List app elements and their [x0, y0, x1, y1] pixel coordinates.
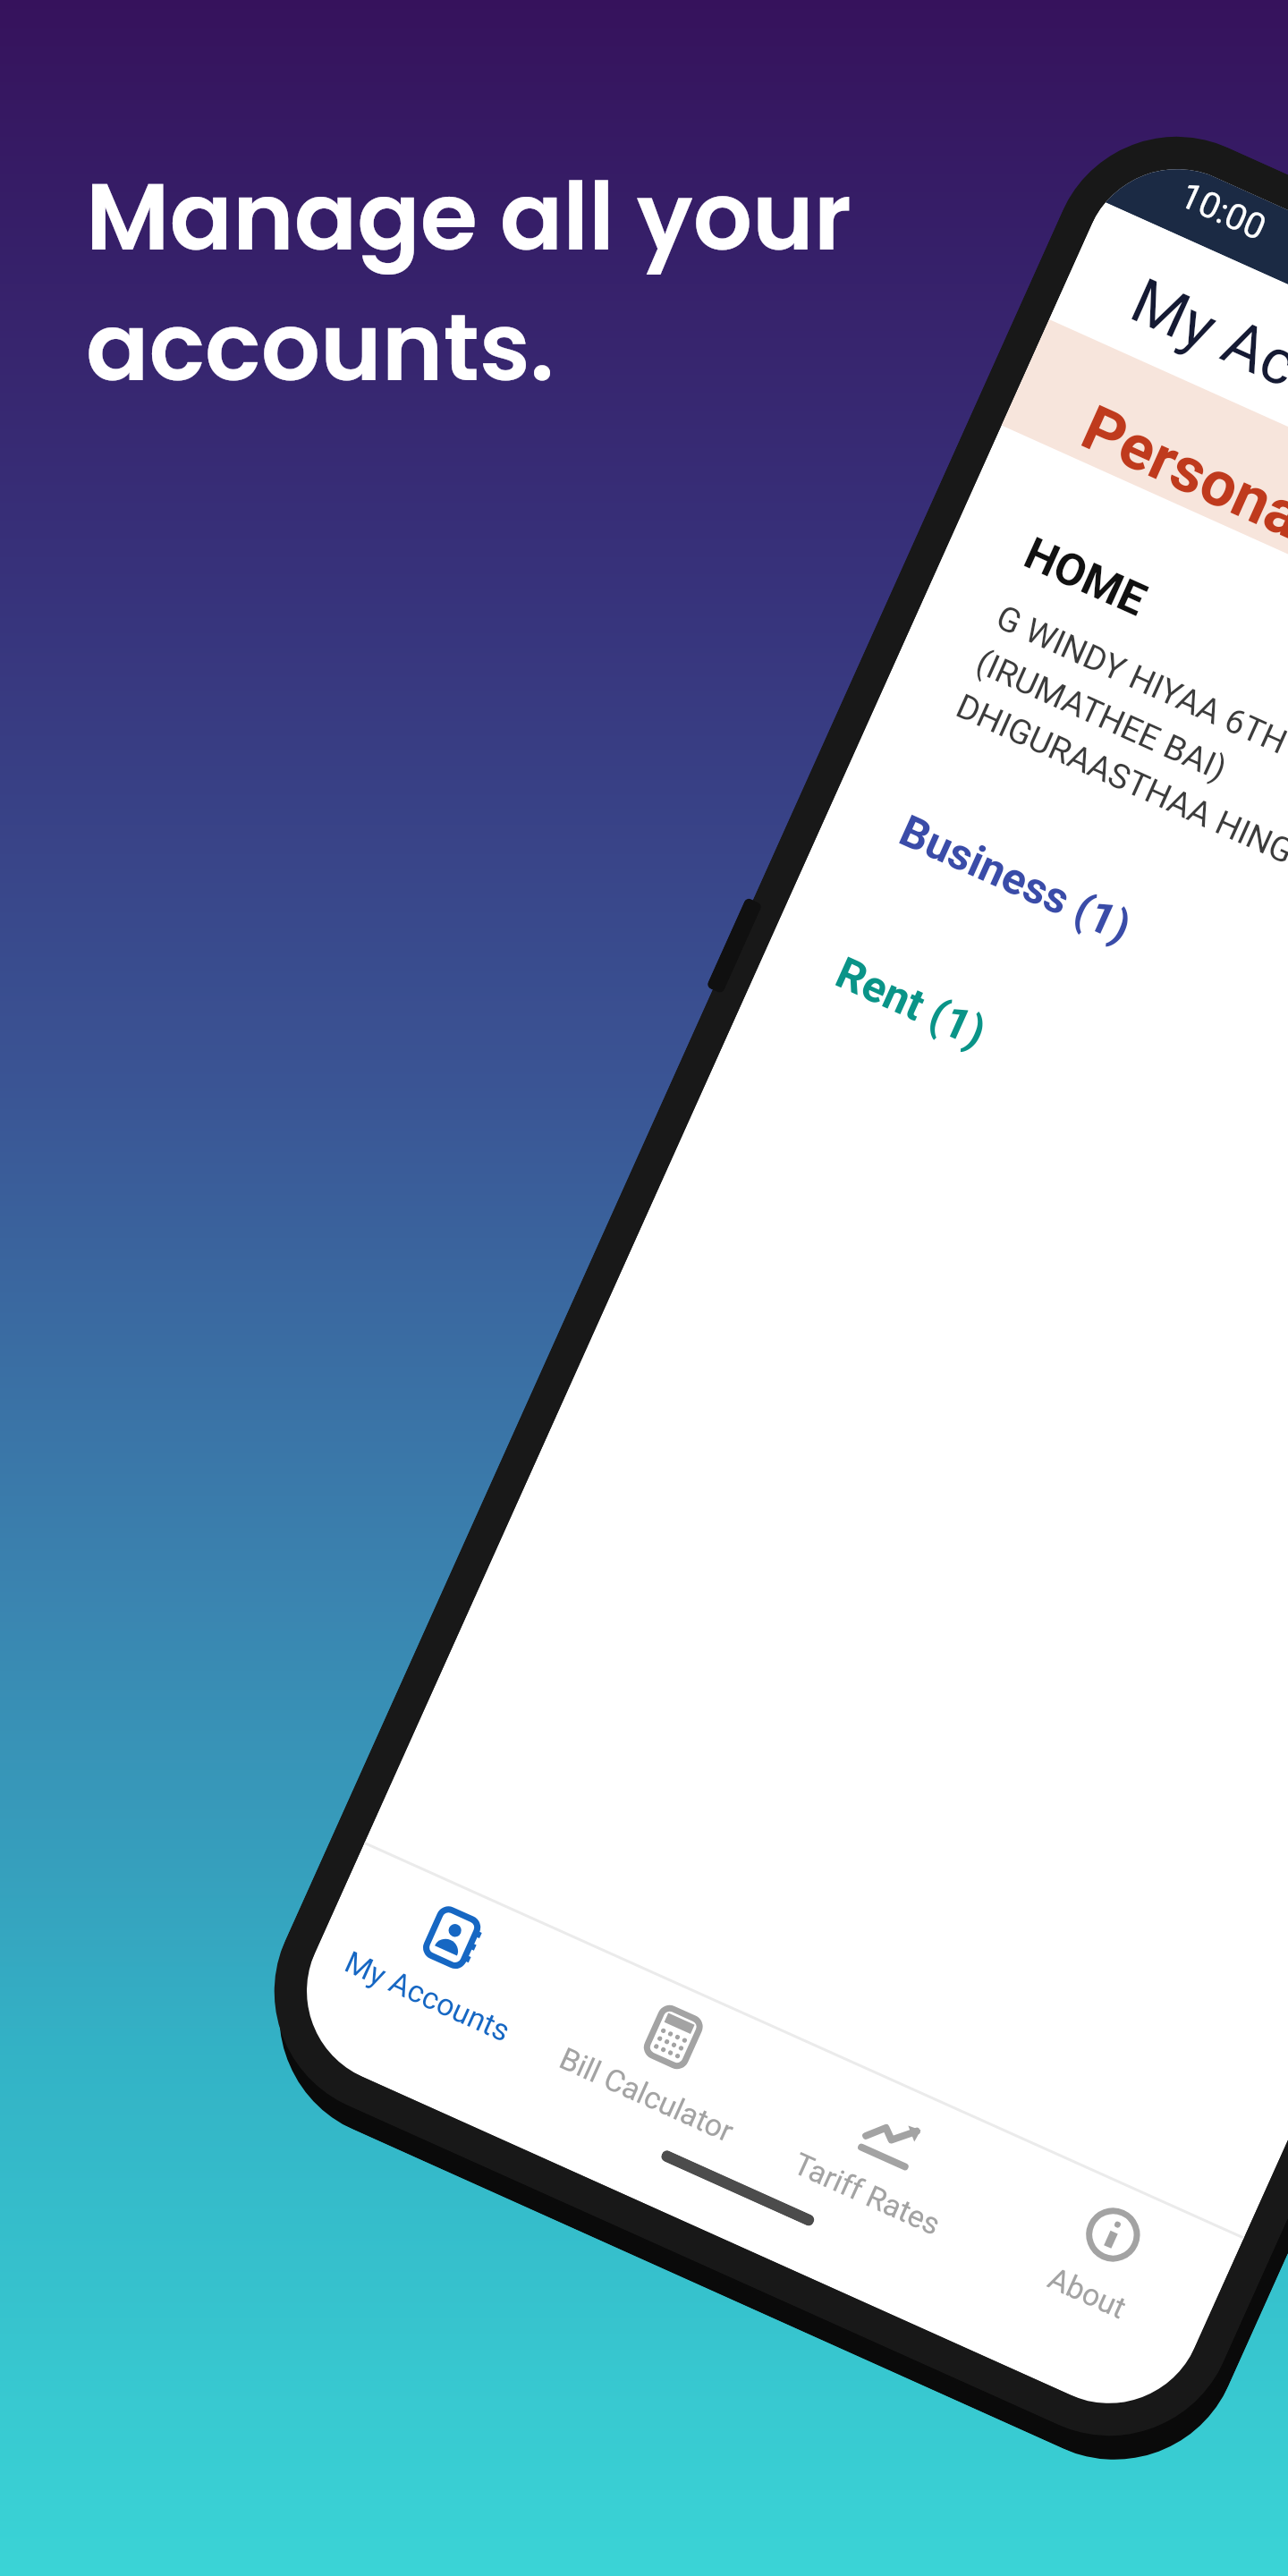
staticText: Bill Calculator	[554, 2040, 739, 2149]
button[interactable]: My Accounts	[277, 1844, 583, 2137]
staticText: HOME	[1016, 527, 1154, 627]
staticText: My Accounts	[1120, 264, 1288, 480]
staticText: About	[1043, 2260, 1132, 2326]
button[interactable]: Bill Calculator	[496, 1943, 803, 2235]
staticText: My Accounts	[340, 1944, 516, 2049]
staticText: 10:00	[1174, 174, 1272, 249]
button[interactable]: About	[936, 2140, 1243, 2434]
staticText: Personal (1)	[1072, 391, 1288, 598]
staticText: G WINDY HIYAA 6TH FLOOR (IRUMATHEE BAI) …	[950, 597, 1288, 934]
button[interactable]: Tariff Rates	[715, 2041, 1023, 2334]
staticText: Manage all your accounts.	[86, 152, 852, 412]
button[interactable]: Rent (1)	[828, 947, 1288, 1358]
button[interactable]: HOME	[950, 527, 1288, 1087]
staticText: Business (1)	[892, 805, 1139, 953]
staticText: Rent (1)	[828, 947, 994, 1059]
button[interactable]: Personal (1)	[1001, 319, 1288, 821]
button[interactable]: Business (1)	[892, 805, 1288, 1216]
staticText: Tariff Rates	[788, 2145, 946, 2242]
